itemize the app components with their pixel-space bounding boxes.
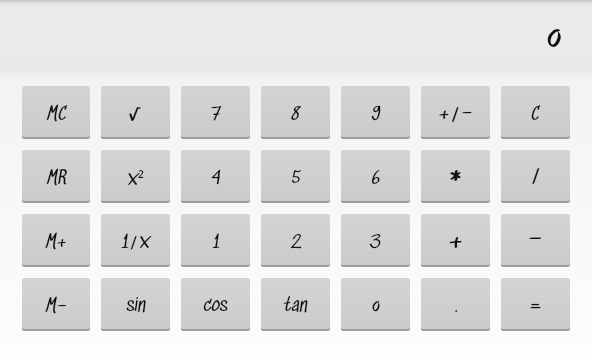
button[interactable]: 3 bbox=[341, 214, 410, 265]
staticText: 2 bbox=[290, 232, 302, 253]
staticText: 7 bbox=[211, 104, 221, 125]
button[interactable]: Equals bbox=[501, 278, 570, 329]
button[interactable]: tan bbox=[261, 278, 330, 329]
button[interactable]: M+ bbox=[22, 214, 90, 265]
staticText: / bbox=[530, 163, 542, 188]
button[interactable]: Plus minus sign bbox=[421, 86, 490, 137]
staticText: * bbox=[447, 164, 465, 201]
button[interactable]: MC bbox=[22, 86, 90, 137]
button[interactable]: Divide bbox=[501, 150, 570, 201]
button[interactable]: x² bbox=[101, 150, 170, 201]
button[interactable]: Multiply bbox=[421, 150, 490, 201]
staticText: 5 bbox=[291, 168, 301, 189]
staticText: MR bbox=[46, 168, 67, 189]
button[interactable]: Subtract bbox=[501, 214, 570, 265]
staticText: . bbox=[454, 296, 458, 317]
staticText: x² bbox=[127, 167, 144, 190]
staticText: M– bbox=[45, 296, 67, 317]
button[interactable]: 0 bbox=[341, 278, 410, 329]
button[interactable]: 9 bbox=[341, 86, 410, 137]
staticText: 9 bbox=[371, 104, 381, 125]
button[interactable]: sin bbox=[101, 278, 170, 329]
staticText: 3 bbox=[370, 232, 381, 253]
button[interactable]: 1 bbox=[181, 214, 250, 265]
button[interactable]: cos bbox=[181, 278, 250, 329]
button[interactable]: Decimal point bbox=[421, 278, 490, 329]
button[interactable]: MR bbox=[22, 150, 90, 201]
staticText: M+ bbox=[45, 232, 67, 253]
button[interactable]: 4 bbox=[181, 150, 250, 201]
staticText: √ bbox=[129, 101, 142, 127]
button[interactable]: 8 bbox=[261, 86, 330, 137]
staticText: tan bbox=[283, 296, 308, 317]
staticText: 1/x bbox=[121, 232, 150, 253]
staticText: 8 bbox=[291, 104, 300, 125]
staticText: cos bbox=[203, 296, 228, 317]
staticText: = bbox=[529, 292, 542, 318]
button[interactable]: 6 bbox=[341, 150, 410, 201]
staticText: sin bbox=[126, 296, 146, 317]
staticText: +/– bbox=[438, 102, 473, 126]
button[interactable]: C bbox=[501, 86, 570, 137]
button[interactable]: 2 bbox=[261, 214, 330, 265]
button[interactable]: 5 bbox=[261, 150, 330, 201]
staticText: MC bbox=[46, 104, 67, 125]
staticText: C bbox=[531, 104, 540, 125]
staticText: – bbox=[528, 225, 543, 255]
staticText: 6 bbox=[371, 168, 381, 189]
button[interactable]: M– bbox=[22, 278, 90, 329]
staticText: 1 bbox=[212, 232, 220, 253]
button[interactable]: 7 bbox=[181, 86, 250, 137]
button[interactable]: 1/x bbox=[101, 214, 170, 265]
button[interactable]: Add bbox=[421, 214, 490, 265]
staticText: 0 bbox=[546, 14, 563, 60]
staticText: + bbox=[448, 226, 464, 257]
staticText: 4 bbox=[211, 168, 221, 189]
staticText: 0 bbox=[371, 293, 381, 318]
button[interactable]: Square root bbox=[101, 86, 170, 137]
